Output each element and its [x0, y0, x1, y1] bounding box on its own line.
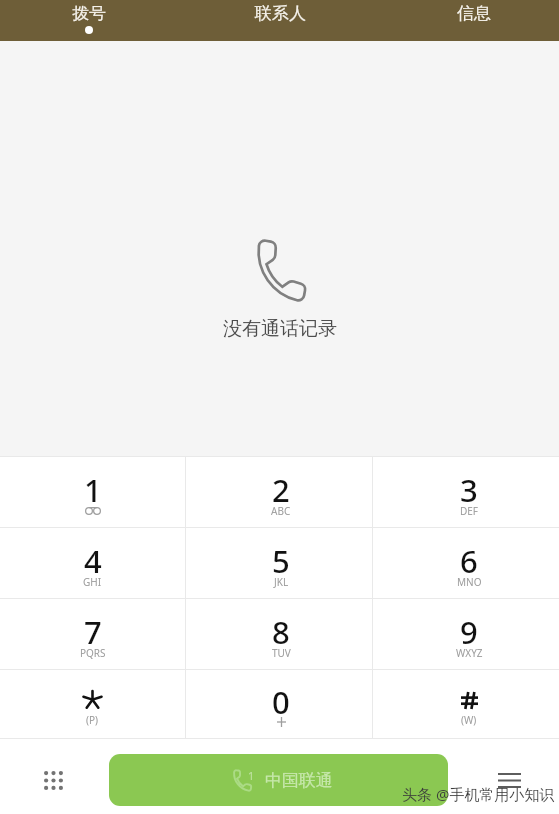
staticText: 1 — [84, 469, 102, 511]
button[interactable]: More options — [485, 756, 533, 804]
staticText: 4 — [84, 540, 102, 582]
button[interactable]: 1 — [109, 754, 448, 806]
staticText: DEF — [460, 504, 479, 518]
button[interactable]: 8 — [186, 599, 372, 669]
button[interactable]: 5 — [186, 528, 372, 598]
staticText: (P) — [86, 713, 99, 727]
button[interactable]: 4 — [0, 528, 185, 598]
staticText: 头条 @手机常用小知识 — [402, 784, 555, 804]
button[interactable]: 2 — [186, 457, 372, 527]
button[interactable]: 拨号 — [0, 0, 186, 41]
staticText: TUV — [272, 646, 291, 660]
staticText: 拨号 — [72, 3, 106, 24]
staticText: 5 — [272, 540, 290, 582]
staticText: PQRS — [80, 646, 106, 660]
button[interactable]: 0 — [186, 670, 372, 738]
button[interactable]: Show keypad — [29, 756, 77, 804]
button[interactable]: 信息 — [373, 0, 559, 41]
staticText: 9 — [460, 611, 478, 653]
staticText: 3 — [460, 469, 478, 511]
staticText: 6 — [460, 540, 478, 582]
staticText: 信息 — [457, 3, 491, 24]
button[interactable]: 1 — [0, 457, 185, 527]
staticText: GHI — [83, 575, 102, 589]
staticText: 没有通话记录 — [223, 317, 337, 341]
button[interactable]: (W) — [373, 670, 559, 738]
staticText: 1 — [248, 768, 255, 783]
staticText: WXYZ — [456, 646, 483, 660]
button[interactable]: 7 — [0, 599, 185, 669]
staticText: ABC — [271, 504, 291, 518]
button[interactable]: 联系人 — [186, 0, 373, 41]
button[interactable]: 3 — [373, 457, 559, 527]
staticText: 联系人 — [255, 3, 306, 24]
staticText: 8 — [272, 611, 290, 653]
button[interactable]: 6 — [373, 528, 559, 598]
button[interactable]: 9 — [373, 599, 559, 669]
staticText: 中国联通 — [265, 770, 333, 791]
button[interactable]: (P) — [0, 670, 185, 738]
staticText: 7 — [84, 611, 102, 653]
staticText: 2 — [272, 469, 290, 511]
staticText: 0 — [272, 681, 290, 723]
staticText: MNO — [457, 575, 482, 589]
staticText: (W) — [461, 713, 477, 727]
staticText: JKL — [274, 575, 289, 589]
